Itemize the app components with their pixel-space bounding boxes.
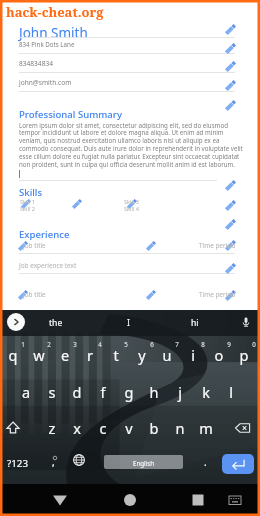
staticText: k bbox=[193, 382, 219, 402]
button[interactable]: l bbox=[218, 382, 244, 402]
staticText: 8 bbox=[197, 340, 209, 348]
button[interactable]: o bbox=[206, 345, 232, 365]
staticText: Lorem ipsum dolor sit amet, consectetur … bbox=[19, 121, 247, 169]
button[interactable]: u bbox=[154, 345, 180, 365]
button[interactable]: p bbox=[231, 345, 257, 365]
button[interactable]: d bbox=[64, 382, 90, 402]
button[interactable]: Voice input bbox=[238, 314, 254, 330]
button[interactable]: Edit bbox=[225, 200, 236, 211]
button[interactable]: b bbox=[141, 418, 167, 438]
staticText: Experience bbox=[19, 228, 70, 241]
button[interactable]: . bbox=[196, 450, 218, 476]
button[interactable]: , bbox=[44, 450, 66, 476]
button[interactable]: Edit bbox=[225, 24, 236, 35]
button[interactable]: Edit bbox=[225, 290, 236, 301]
staticText: 7 bbox=[171, 340, 183, 348]
staticText: Skill 2 bbox=[20, 205, 36, 213]
button[interactable]: Edit bbox=[225, 43, 236, 54]
button[interactable]: g bbox=[116, 382, 142, 402]
button[interactable]: Shift bbox=[1, 416, 25, 440]
button[interactable]: Edit bbox=[225, 263, 236, 274]
button[interactable]: v bbox=[116, 418, 142, 438]
staticText: 2 bbox=[43, 340, 55, 348]
staticText: y bbox=[129, 345, 155, 365]
button[interactable]: m bbox=[193, 418, 219, 438]
button[interactable]: Keyboard bbox=[222, 484, 248, 516]
staticText: hack-cheat.org bbox=[6, 3, 104, 21]
button[interactable]: Edit bbox=[225, 100, 236, 111]
staticText: I bbox=[127, 317, 130, 329]
button[interactable]: w bbox=[26, 345, 52, 365]
button[interactable]: x bbox=[64, 418, 90, 438]
button[interactable]: a bbox=[13, 382, 39, 402]
button[interactable]: c bbox=[90, 418, 116, 438]
staticText: s bbox=[39, 382, 65, 402]
button[interactable]: Edit bbox=[225, 240, 236, 251]
button[interactable]: Edit bbox=[72, 199, 82, 209]
button[interactable]: Edit bbox=[225, 219, 236, 230]
staticText: Skill 4 bbox=[124, 205, 140, 213]
button[interactable]: ?123 bbox=[2, 450, 40, 476]
staticText: hi bbox=[191, 317, 199, 329]
button[interactable]: Edit bbox=[146, 241, 156, 251]
button[interactable]: z bbox=[39, 418, 65, 438]
staticText: Professional Summary bbox=[19, 108, 122, 121]
staticText: p bbox=[231, 345, 257, 365]
staticText: c bbox=[90, 418, 116, 438]
button[interactable]: Edit bbox=[225, 80, 236, 91]
staticText: h bbox=[141, 382, 167, 402]
staticText: o bbox=[206, 345, 232, 365]
staticText: 1 bbox=[17, 340, 29, 348]
staticText: 6 bbox=[146, 340, 158, 348]
button[interactable]: Back bbox=[44, 484, 76, 516]
staticText: g bbox=[116, 382, 142, 402]
staticText: b bbox=[141, 418, 167, 438]
button[interactable]: Edit bbox=[225, 61, 236, 72]
button[interactable]: Edit bbox=[225, 180, 236, 191]
staticText: r bbox=[77, 345, 103, 365]
button[interactable]: h bbox=[141, 382, 167, 402]
button[interactable]: y bbox=[129, 345, 155, 365]
staticText: Skill 3 bbox=[124, 198, 140, 206]
staticText: n bbox=[167, 418, 193, 438]
button[interactable]: j bbox=[167, 382, 193, 402]
button[interactable]: Edit bbox=[146, 290, 156, 300]
button[interactable]: Edit bbox=[18, 290, 28, 300]
staticText: , bbox=[52, 455, 55, 469]
staticText: u bbox=[154, 345, 180, 365]
button[interactable]: Expand suggestions bbox=[7, 313, 25, 331]
button[interactable]: r bbox=[77, 345, 103, 365]
staticText: m bbox=[193, 418, 219, 438]
button[interactable]: q bbox=[0, 345, 26, 365]
button[interactable]: e bbox=[52, 345, 78, 365]
button[interactable]: Change language bbox=[70, 451, 88, 469]
staticText: the bbox=[49, 317, 63, 329]
staticText: x bbox=[64, 418, 90, 438]
button[interactable]: English bbox=[104, 455, 183, 469]
staticText: Time period bbox=[199, 290, 236, 299]
button[interactable]: Edit bbox=[18, 241, 28, 251]
button[interactable]: Edit bbox=[21, 199, 31, 209]
staticText: . bbox=[204, 455, 207, 469]
button[interactable]: f bbox=[90, 382, 116, 402]
staticText: Skills bbox=[19, 186, 43, 199]
button[interactable]: Backspace bbox=[231, 416, 255, 440]
button[interactable]: i bbox=[180, 345, 206, 365]
button[interactable]: t bbox=[103, 345, 129, 365]
button[interactable]: Recents bbox=[182, 484, 214, 516]
staticText: f bbox=[90, 382, 116, 402]
staticText: v bbox=[116, 418, 142, 438]
staticText: 4 bbox=[94, 340, 106, 348]
button[interactable]: Edit bbox=[127, 199, 137, 209]
staticText: a bbox=[13, 382, 39, 402]
button[interactable]: Home bbox=[114, 484, 146, 516]
button[interactable]: s bbox=[39, 382, 65, 402]
button[interactable]: k bbox=[193, 382, 219, 402]
staticText: 3 bbox=[69, 340, 81, 348]
button[interactable]: Enter bbox=[222, 454, 254, 474]
staticText: j bbox=[167, 382, 193, 402]
staticText: z bbox=[39, 418, 65, 438]
button[interactable]: n bbox=[167, 418, 193, 438]
staticText: q bbox=[0, 345, 26, 365]
staticText: 834 Pink Dots Lane bbox=[19, 40, 75, 48]
